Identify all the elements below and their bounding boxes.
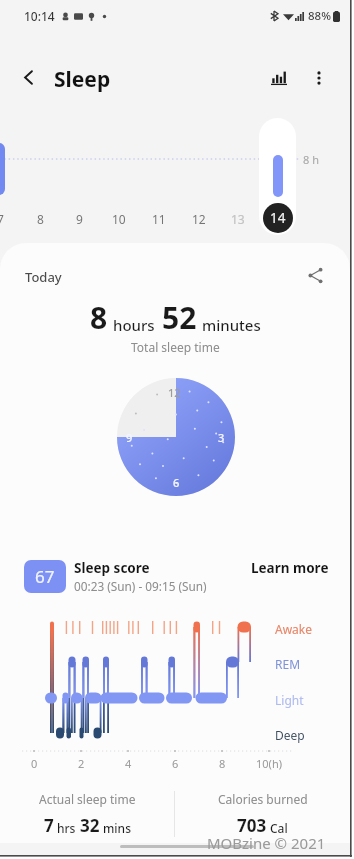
staticText: 3 [218,430,225,445]
staticText: 0 [31,756,38,771]
staticText: Deep [275,727,305,743]
staticText: hours [113,315,155,335]
staticText: 7 [0,211,4,227]
staticText: 4 [125,756,132,771]
staticText: 88% [308,8,331,24]
staticText: Awake [275,621,313,637]
staticText: 52 [162,297,197,338]
staticText: 13 [231,211,245,227]
staticText: 9 [126,430,133,445]
button[interactable]: More options [302,61,335,94]
staticText: mins [103,820,131,836]
button[interactable]: 67 [24,553,329,599]
staticText: Today [25,268,62,286]
staticText: 6 [173,475,180,490]
staticText: 00:23 (Sun) - 09:15 (Sun) [74,578,207,594]
staticText: 703 [237,814,267,837]
staticText: MOBzine © 2021 [207,833,326,853]
staticText: 10:14 [24,8,55,24]
staticText: 8 [90,297,108,338]
staticText: 10(h) [256,756,282,771]
button[interactable]: Share [300,260,330,290]
staticText: 12 [168,385,181,400]
staticText: 14 [270,209,286,227]
staticText: Learn more [251,559,329,577]
staticText: 7 [44,814,54,837]
staticText: 67 [35,565,55,588]
staticText: Light [275,692,304,708]
staticText: hrs [57,820,76,836]
staticText: 6 [172,756,179,771]
staticText: 12 [192,211,206,227]
staticText: minutes [202,315,261,335]
staticText: Total sleep time [131,339,220,355]
staticText: Sleep [54,65,111,94]
staticText: Cal [270,820,288,836]
button[interactable]: Trends chart [262,61,295,94]
staticText: 9 [76,211,83,227]
staticText: 11 [152,211,166,227]
staticText: 8 [37,211,44,227]
staticText: 8 h [303,152,319,167]
staticText: 32 [80,814,100,837]
staticText: 10 [112,211,126,227]
button[interactable]: 14 [259,118,296,235]
staticText: Actual sleep time [39,791,136,807]
staticText: Sleep score [74,559,150,577]
staticText: Calories burned [218,791,308,807]
staticText: 2 [78,756,85,771]
button[interactable]: Navigate up [12,61,45,94]
staticText: 8 [219,756,226,771]
staticText: REM [275,656,301,672]
